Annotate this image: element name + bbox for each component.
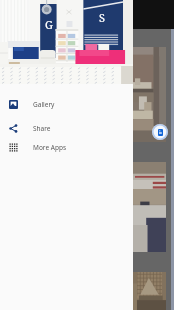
staticText: More Apps [33, 143, 67, 152]
staticText: G [45, 17, 53, 32]
staticText: Gallery [33, 100, 55, 109]
button[interactable] [6, 47, 165, 142]
staticText: S [99, 10, 105, 25]
button[interactable]: Share [0, 117, 133, 139]
button[interactable]: Gallery [0, 92, 133, 116]
button[interactable] [6, 272, 165, 310]
button[interactable]: More Apps [0, 138, 133, 156]
button[interactable] [6, 162, 165, 252]
staticText: Share [33, 124, 51, 133]
button[interactable]: Open document [152, 124, 168, 140]
